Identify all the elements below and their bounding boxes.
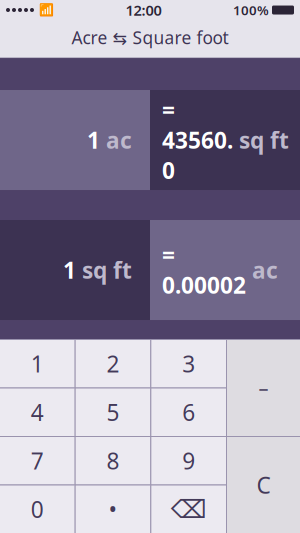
staticText: 5 xyxy=(106,397,119,427)
staticText: – xyxy=(258,375,268,401)
button[interactable]: 1 xyxy=(0,220,150,320)
staticText: 3 xyxy=(182,349,195,379)
button[interactable]: Backspace xyxy=(151,485,226,533)
button[interactable]: C xyxy=(227,437,300,533)
staticText: = 43560.0 xyxy=(162,95,233,185)
staticText: 1 xyxy=(63,255,76,285)
staticText: 0 xyxy=(31,494,44,524)
button[interactable]: 8 xyxy=(76,437,150,484)
staticText: 1 xyxy=(87,125,100,155)
button[interactable]: 1 xyxy=(0,90,150,190)
staticText: = 0.00002 xyxy=(162,240,246,300)
button[interactable]: = 43560.0 xyxy=(150,90,300,190)
staticText: ⌫ xyxy=(171,495,207,524)
button[interactable]: • xyxy=(76,485,150,533)
staticText: 9 xyxy=(182,446,195,476)
staticText: 100% xyxy=(233,1,269,19)
button[interactable]: 2 xyxy=(76,340,150,387)
staticText: 6 xyxy=(182,397,195,427)
staticText: • xyxy=(108,494,117,524)
staticText: ac xyxy=(246,255,278,285)
staticText: sq ft xyxy=(233,125,289,155)
staticText: C xyxy=(256,470,270,500)
button[interactable]: 4 xyxy=(0,388,75,436)
staticText: 2 xyxy=(106,349,119,379)
staticText: 4 xyxy=(31,397,44,427)
staticText: sq ft xyxy=(76,255,132,285)
staticText: 📶 xyxy=(39,3,54,17)
button[interactable]: – xyxy=(227,340,300,436)
staticText: Acre ⇆ Square foot xyxy=(71,26,228,49)
button[interactable]: 5 xyxy=(76,388,150,436)
button[interactable]: 3 xyxy=(151,340,226,387)
button[interactable]: 7 xyxy=(0,437,75,484)
staticText: 8 xyxy=(106,446,119,476)
staticText: ac xyxy=(100,125,132,155)
staticText: 12:00 xyxy=(125,0,161,20)
button[interactable]: 6 xyxy=(151,388,226,436)
button[interactable]: 9 xyxy=(151,437,226,484)
button[interactable]: 1 xyxy=(0,340,75,387)
button[interactable]: = 0.00002 xyxy=(150,220,300,320)
staticText: 7 xyxy=(31,446,44,476)
button[interactable]: 0 xyxy=(0,485,75,533)
staticText: 1 xyxy=(31,349,44,379)
button[interactable]: Acre ⇆ Square foot xyxy=(0,20,300,55)
